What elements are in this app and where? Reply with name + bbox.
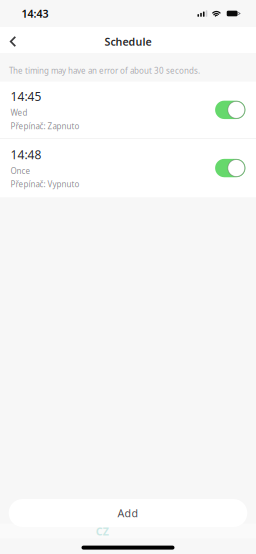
button[interactable]: 14:48 [0,139,256,197]
staticText: 14:43 [21,6,48,21]
staticText: CZ [96,524,109,539]
staticText: Add [117,506,138,520]
staticText: Once [10,165,30,176]
button[interactable]: Add [9,499,247,527]
staticText: Přepínač: Vypnuto [10,179,79,189]
staticText: The timing may have an error of about 30… [9,65,200,76]
staticText: Schedule [104,34,151,49]
staticText: Wed [10,107,27,118]
button[interactable]: Back [2,25,24,54]
staticText: 14:45 [10,88,41,104]
staticText: Přepínač: Zapnuto [10,121,79,131]
button[interactable]: 14:45 [0,82,256,138]
staticText: 14:48 [10,147,41,162]
